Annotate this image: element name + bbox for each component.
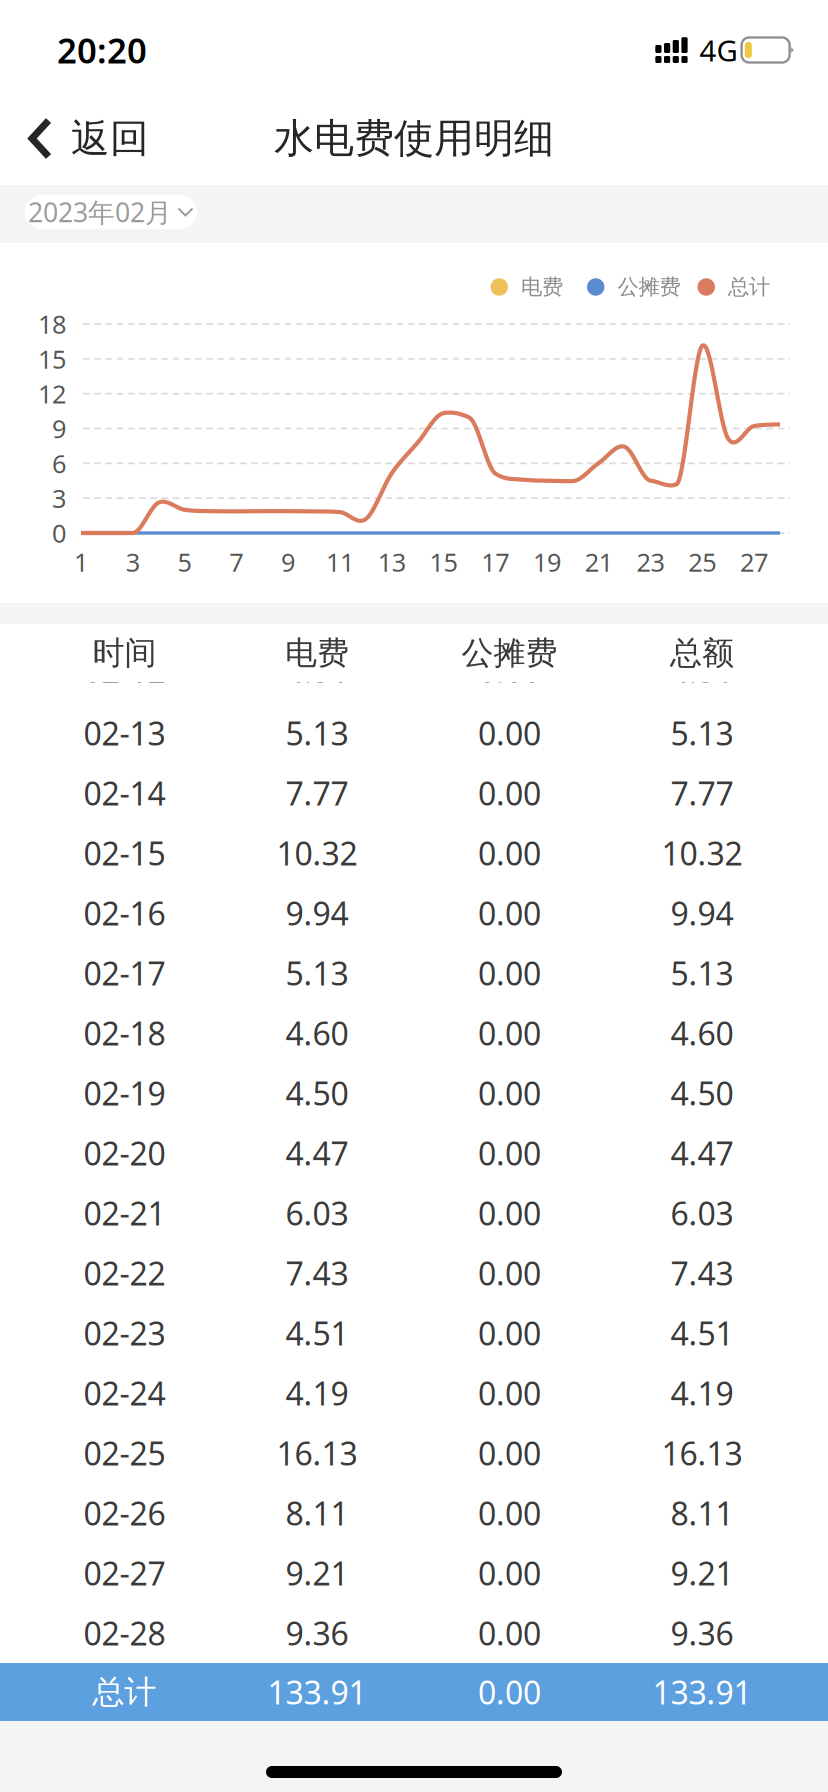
staticText: 返回 [71, 115, 149, 162]
staticText: 4.19 [670, 1372, 733, 1414]
staticText: 0.00 [478, 772, 541, 814]
staticText: 7.77 [670, 772, 733, 814]
staticText: 7.43 [670, 1252, 733, 1294]
staticText: 02-26 [83, 1492, 165, 1534]
staticText: 4.60 [670, 1012, 733, 1054]
staticText: 18 [38, 307, 66, 341]
staticText: 10.32 [276, 832, 357, 874]
staticText: 8.11 [670, 1492, 733, 1534]
staticText: 9.94 [670, 892, 733, 934]
staticText: 4G [700, 30, 738, 69]
staticText: 0.00 [478, 832, 541, 874]
button[interactable]: 返回 [0, 92, 167, 185]
staticText: 公摊费 [617, 274, 680, 300]
staticText: 15 [429, 545, 457, 579]
staticText: 电费 [521, 274, 563, 300]
staticText: 0.00 [478, 649, 541, 691]
staticText: 0 [52, 516, 66, 550]
staticText: 02-22 [83, 1252, 165, 1294]
staticText: 电费 [285, 633, 349, 673]
staticText: 总额 [670, 633, 734, 673]
staticText: 0.00 [478, 1372, 541, 1414]
staticText: 6.03 [670, 1192, 733, 1234]
staticText: 02-20 [83, 1132, 165, 1174]
staticText: 3 [52, 481, 66, 515]
staticText: 时间 [92, 633, 156, 673]
staticText: 02-27 [83, 1552, 165, 1594]
staticText: 5 [178, 545, 192, 579]
staticText: 0.00 [478, 892, 541, 934]
staticText: 02-23 [83, 1312, 165, 1354]
staticText: 12 [38, 377, 66, 410]
staticText: 0.00 [478, 712, 541, 754]
staticText: 17 [481, 545, 509, 579]
staticText: 133.91 [652, 1671, 751, 1713]
staticText: 15 [38, 342, 66, 376]
staticText: 9 [281, 545, 295, 579]
staticText: 02-16 [83, 892, 165, 934]
staticText: 02-14 [83, 772, 165, 814]
staticText: 9.36 [670, 1612, 733, 1654]
staticText: 0.00 [478, 1072, 541, 1114]
staticText: 9.94 [285, 892, 348, 934]
staticText: 4.50 [670, 1072, 733, 1114]
staticText: 0.00 [478, 952, 541, 994]
staticText: 10.32 [661, 832, 742, 874]
staticText: 21 [585, 545, 613, 579]
staticText: 0.00 [478, 1012, 541, 1054]
staticText: 133.91 [267, 1671, 366, 1713]
staticText: 02-28 [83, 1612, 165, 1654]
staticText: 0.00 [478, 1252, 541, 1294]
staticText: 7 [229, 545, 243, 579]
staticText: 02-24 [83, 1372, 165, 1414]
staticText: 02-18 [83, 1012, 165, 1054]
staticText: 4.47 [670, 1132, 733, 1174]
staticText: 0.00 [478, 1192, 541, 1234]
staticText: 4.19 [285, 1372, 348, 1414]
staticText: 27 [740, 545, 768, 579]
staticText: 3 [126, 545, 140, 579]
staticText: 02-13 [83, 712, 165, 754]
staticText: 0.00 [478, 1492, 541, 1534]
staticText: 公摊费 [461, 633, 557, 673]
staticText: 20:20 [57, 27, 147, 73]
staticText: 总计 [728, 274, 770, 300]
staticText: 02-21 [83, 1192, 165, 1234]
staticText: 4.51 [670, 1312, 733, 1354]
staticText: 02-25 [83, 1432, 165, 1474]
staticText: 4.60 [285, 1012, 348, 1054]
staticText: 5.13 [670, 952, 733, 994]
staticText: 9.36 [285, 1612, 348, 1654]
staticText: 4.51 [285, 649, 348, 691]
staticText: 7.43 [285, 1252, 348, 1294]
staticText: 19 [533, 545, 561, 579]
staticText: 9.21 [670, 1552, 733, 1594]
staticText: 0.00 [478, 1612, 541, 1654]
staticText: 4.51 [285, 1312, 348, 1354]
staticText: 0.00 [478, 1552, 541, 1594]
button[interactable]: 2023年02月 [25, 195, 197, 229]
staticText: 23 [637, 545, 665, 579]
staticText: 13 [378, 545, 406, 579]
staticText: 25 [688, 545, 716, 579]
staticText: 4.50 [285, 1072, 348, 1114]
staticText: 总计 [92, 1672, 156, 1712]
staticText: 6 [52, 446, 66, 480]
staticText: 8.11 [285, 1492, 348, 1534]
staticText: 16.13 [661, 1432, 742, 1474]
staticText: 5.13 [285, 712, 348, 754]
staticText: 6.03 [285, 1192, 348, 1234]
staticText: 0.00 [478, 1312, 541, 1354]
staticText: 5.13 [670, 712, 733, 754]
staticText: 9 [52, 412, 66, 445]
staticText: 5.13 [285, 952, 348, 994]
staticText: 9.21 [285, 1552, 348, 1594]
staticText: 16.13 [276, 1432, 357, 1474]
staticText: 0.00 [478, 1132, 541, 1174]
staticText: 0.00 [478, 1432, 541, 1474]
staticText: 水电费使用明细 [274, 114, 554, 163]
staticText: 4.51 [670, 649, 733, 691]
staticText: 11 [326, 545, 354, 579]
staticText: 02-17 [83, 952, 165, 994]
staticText: 02-19 [83, 1072, 165, 1114]
